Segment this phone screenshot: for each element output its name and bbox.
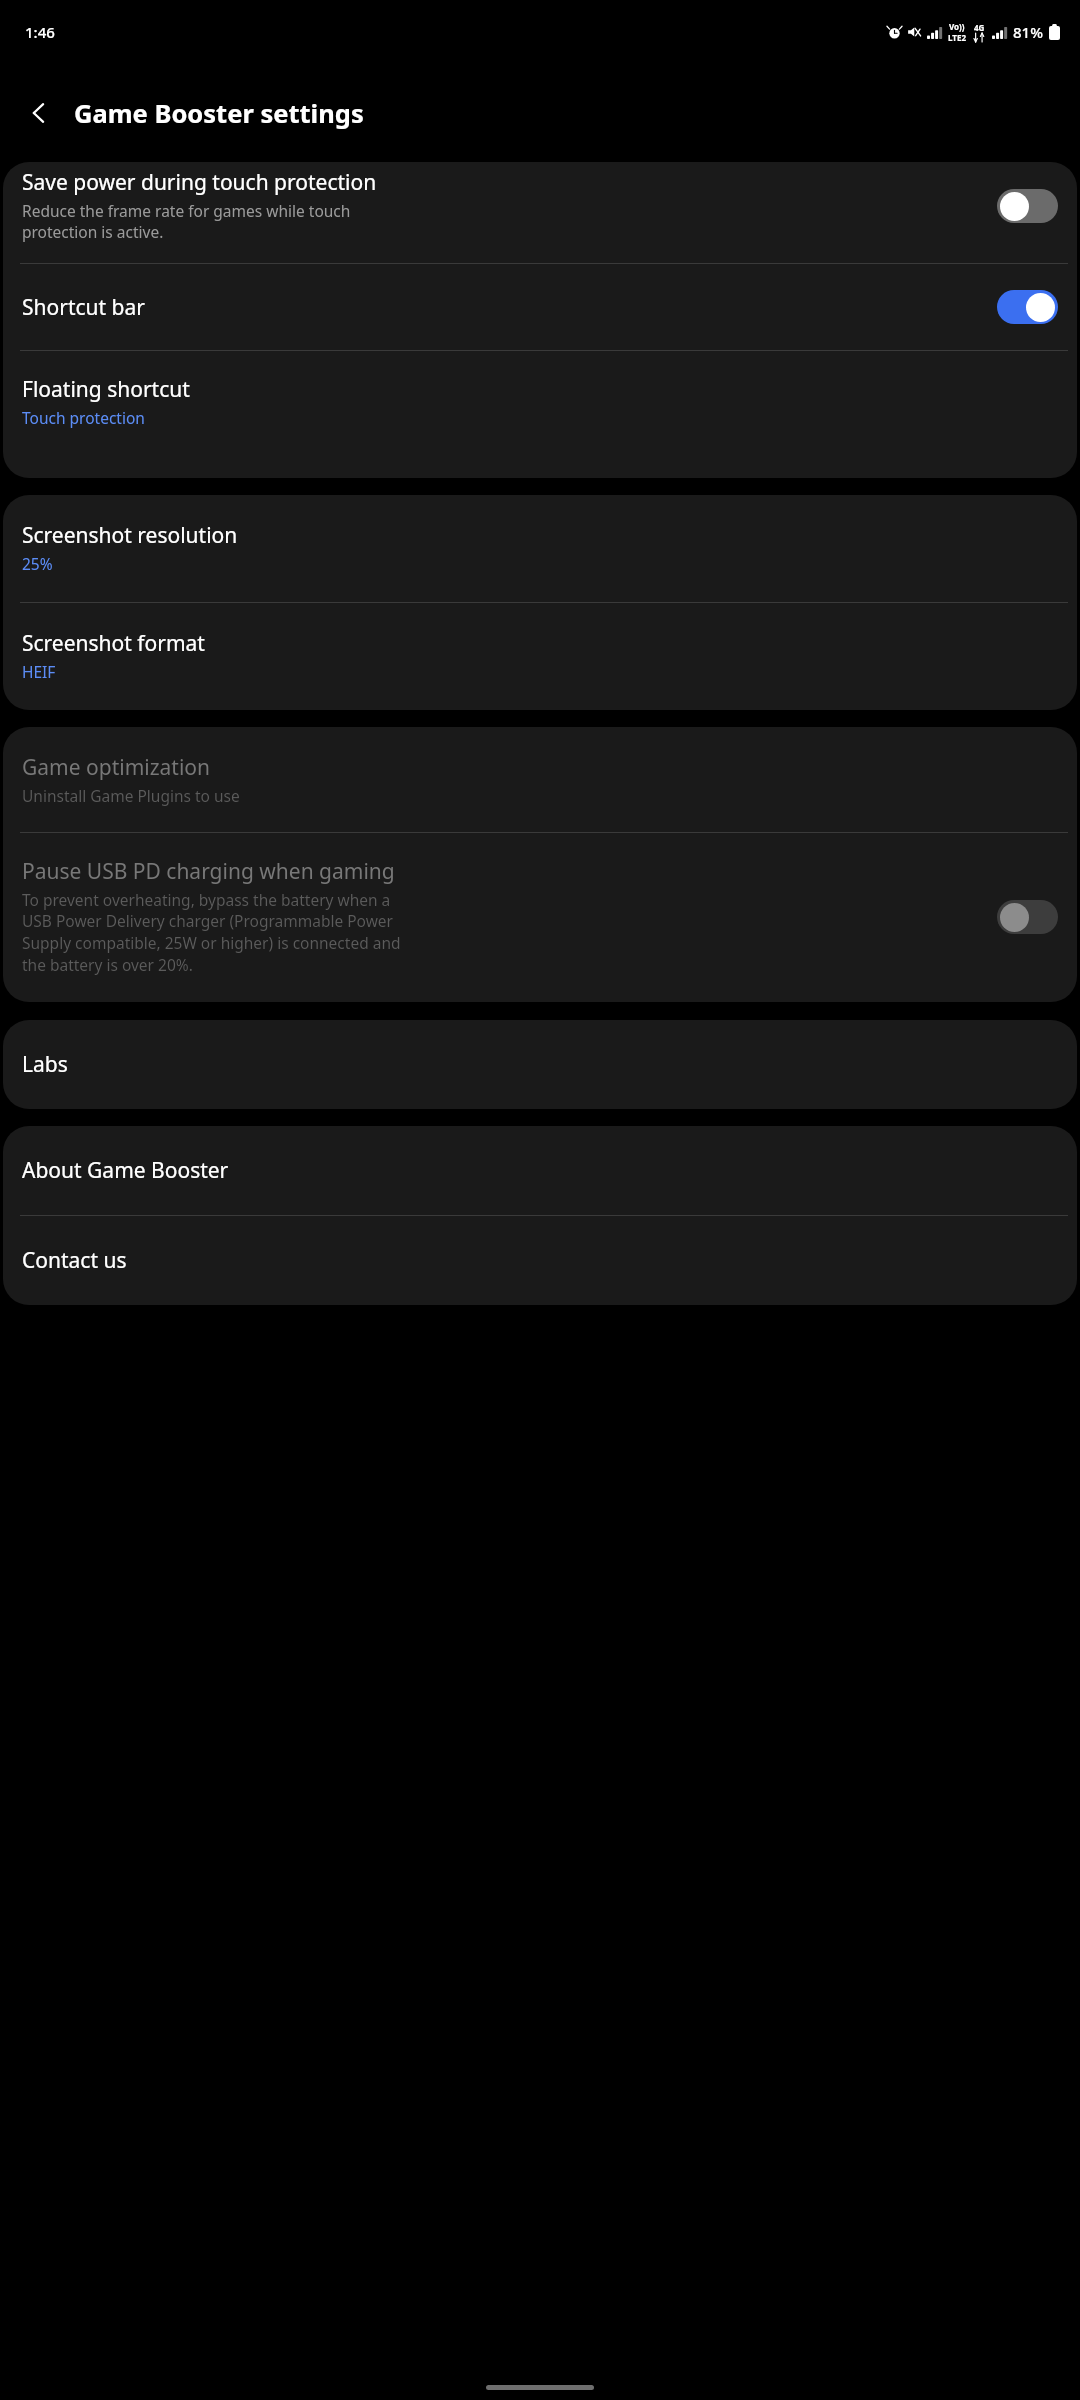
staticText: LTE2: [948, 32, 966, 43]
button[interactable]: Off: [997, 189, 1058, 223]
button[interactable]: Game optimization: [3, 727, 1077, 832]
button[interactable]: About Game Booster: [3, 1126, 1077, 1215]
staticText: 25%: [22, 553, 53, 574]
staticText: 81%: [1013, 22, 1043, 42]
button[interactable]: Labs: [3, 1020, 1077, 1109]
button[interactable]: Screenshot format: [3, 603, 1077, 710]
staticText: Touch protection: [22, 407, 145, 428]
staticText: Shortcut bar: [22, 293, 145, 322]
button[interactable]: Screenshot resolution: [3, 495, 1077, 602]
staticText: Uninstall Game Plugins to use: [22, 785, 240, 806]
button[interactable]: On: [997, 290, 1058, 324]
button[interactable]: Save power during touch protection: [3, 162, 1077, 263]
staticText: Reduce the frame rate for games while to…: [22, 200, 351, 243]
staticText: 4G: [974, 22, 985, 33]
button[interactable]: Floating shortcut: [3, 351, 1077, 458]
staticText: Game optimization: [22, 753, 211, 782]
button[interactable]: Contact us: [3, 1216, 1077, 1305]
button[interactable]: Shortcut bar: [3, 264, 1077, 350]
staticText: HEIF: [22, 661, 56, 682]
staticText: Game Booster settings: [74, 96, 364, 131]
staticText: To prevent overheating, bypass the batte…: [22, 889, 401, 976]
staticText: Pause USB PD charging when gaming: [22, 857, 395, 886]
staticText: 1:46: [25, 22, 55, 42]
staticText: Labs: [22, 1050, 68, 1079]
button[interactable]: Off: [997, 900, 1058, 934]
staticText: Floating shortcut: [22, 375, 190, 404]
staticText: About Game Booster: [22, 1156, 229, 1185]
button[interactable]: Pause USB PD charging when gaming: [3, 833, 1077, 1002]
staticText: Screenshot resolution: [22, 521, 238, 550]
staticText: Contact us: [22, 1246, 127, 1275]
staticText: Screenshot format: [22, 629, 205, 658]
staticText: Vo)): [949, 21, 965, 32]
button[interactable]: Back: [12, 86, 66, 140]
staticText: Save power during touch protection: [22, 168, 377, 197]
